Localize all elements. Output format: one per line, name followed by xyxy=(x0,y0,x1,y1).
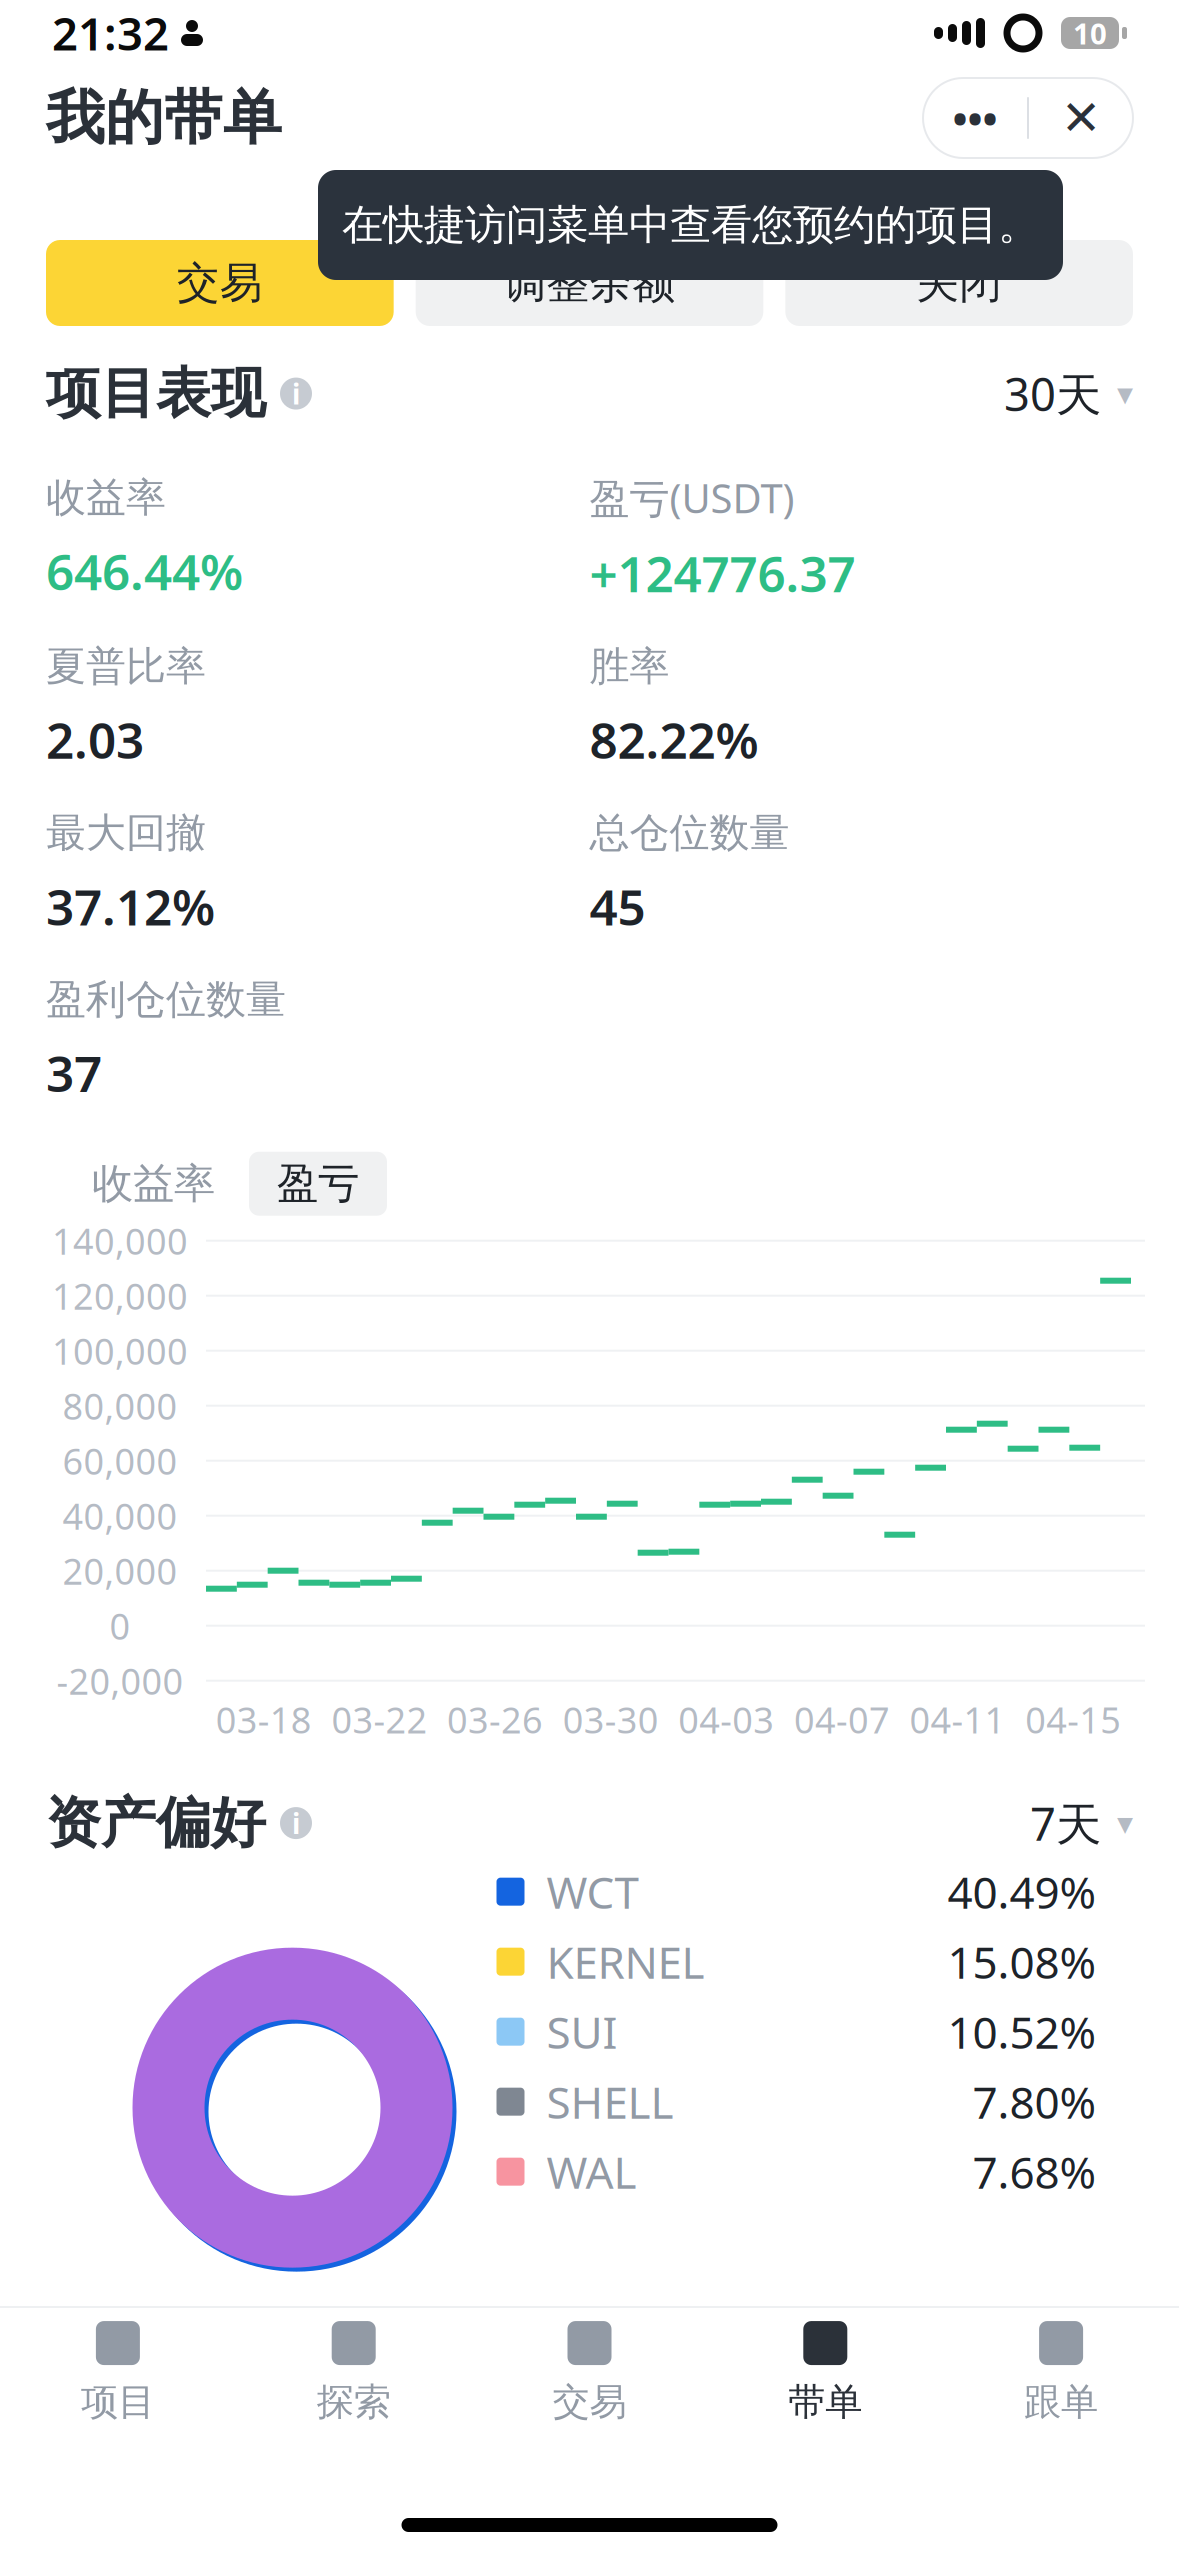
staticText: 03-26 xyxy=(447,1696,543,1743)
staticText: 10 xyxy=(1073,13,1107,52)
button[interactable]: 跟单 xyxy=(943,2308,1179,2438)
staticText: ▾ xyxy=(1117,375,1133,412)
staticText: 盈亏 xyxy=(277,1158,359,1209)
staticText: 收益率 xyxy=(92,1158,215,1209)
staticText: 03-30 xyxy=(563,1696,659,1743)
staticText: 80,000 xyxy=(62,1382,177,1430)
staticText: 04-03 xyxy=(678,1696,774,1743)
staticText: 30天 xyxy=(1004,363,1101,424)
staticText: 7.80% xyxy=(972,2072,1096,2131)
staticText: 交易 xyxy=(552,2379,626,2425)
staticText: 15.08% xyxy=(947,1932,1096,1991)
staticText: 37 xyxy=(46,1040,102,1106)
staticText: 总仓位数量 xyxy=(589,808,789,857)
staticText: ••• xyxy=(952,91,997,144)
button[interactable]: 交易 xyxy=(472,2308,707,2438)
staticText: 2.03 xyxy=(46,707,144,772)
staticText: WCT xyxy=(546,1862,638,1921)
staticText: 项目表现 xyxy=(46,360,266,427)
staticText: 04-07 xyxy=(794,1696,890,1743)
staticText: 收益率 xyxy=(46,473,166,522)
staticText: +124776.37 xyxy=(589,540,855,606)
staticText: 胜率 xyxy=(589,642,669,691)
staticText: 82.22% xyxy=(589,707,758,772)
staticText: 我的带单 xyxy=(46,82,282,154)
staticText: SUI xyxy=(546,2002,617,2061)
staticText: WAL xyxy=(546,2142,636,2201)
staticText: 调整余额 xyxy=(503,257,675,309)
staticText: 最大回撤 xyxy=(46,808,206,857)
staticText: 夏普比率 xyxy=(46,642,206,691)
button[interactable]: 盈亏 xyxy=(249,1152,387,1216)
staticText: 0 xyxy=(109,1602,130,1650)
staticText: 交易 xyxy=(177,257,263,309)
staticText: 646.44% xyxy=(46,538,243,604)
staticText: 100,000 xyxy=(52,1327,188,1375)
button[interactable]: 收益率 xyxy=(70,1152,237,1216)
staticText: 04-15 xyxy=(1025,1696,1121,1743)
staticText: 10.52% xyxy=(947,2002,1096,2061)
staticText: -20,000 xyxy=(56,1657,183,1705)
staticText: 60,000 xyxy=(62,1437,177,1485)
staticText: 40.49% xyxy=(947,1862,1096,1921)
staticText: 20,000 xyxy=(62,1547,177,1595)
button[interactable]: 更多 xyxy=(923,78,1027,158)
staticText: 03-22 xyxy=(331,1696,427,1743)
staticText: 40,000 xyxy=(62,1492,177,1540)
staticText: 21:32 xyxy=(52,3,169,63)
button[interactable]: 交易 xyxy=(46,240,394,326)
staticText: 盈利仓位数量 xyxy=(46,975,286,1024)
staticText: 探索 xyxy=(317,2379,391,2425)
staticText: 项目 xyxy=(81,2379,155,2425)
staticText: ✕ xyxy=(1061,91,1101,145)
staticText: 在快捷访问菜单中查看您预约的项目。 xyxy=(342,200,1039,250)
staticText: i xyxy=(292,1804,300,1842)
button[interactable]: 30天 xyxy=(1004,363,1133,424)
staticText: 04-11 xyxy=(910,1696,1006,1743)
staticText: 45 xyxy=(589,873,645,939)
staticText: 资产偏好 xyxy=(46,1789,266,1857)
staticText: 7.68% xyxy=(972,2142,1096,2201)
button[interactable]: 探索 xyxy=(236,2308,472,2438)
button[interactable]: 调整余额 xyxy=(416,240,763,326)
staticText: 03-18 xyxy=(216,1696,312,1743)
staticText: SHELL xyxy=(546,2072,673,2131)
button[interactable]: 带单 xyxy=(707,2308,943,2438)
button[interactable]: 关闭 xyxy=(785,240,1133,326)
staticText: 带单 xyxy=(788,2379,862,2425)
staticText: 140,000 xyxy=(52,1217,188,1265)
button[interactable]: 7天 xyxy=(1030,1793,1133,1853)
staticText: ▾ xyxy=(1117,1805,1133,1841)
staticText: 盈亏(USDT) xyxy=(589,471,794,524)
staticText: 37.12% xyxy=(46,873,215,939)
button[interactable]: 关闭 xyxy=(1029,78,1133,158)
staticText: 120,000 xyxy=(52,1272,188,1320)
staticText: KERNEL xyxy=(546,1932,704,1991)
staticText: 关闭 xyxy=(916,257,1002,309)
staticText: 跟单 xyxy=(1024,2379,1098,2425)
staticText: i xyxy=(292,375,300,412)
button[interactable]: 项目 xyxy=(0,2308,236,2438)
staticText: 7天 xyxy=(1030,1793,1101,1853)
